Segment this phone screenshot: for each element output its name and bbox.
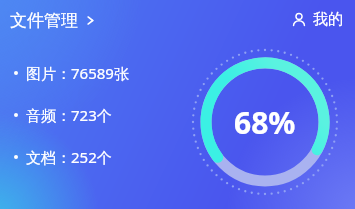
button[interactable]: 图片：76589张 [14,62,129,84]
staticText: 68% [234,102,296,143]
button[interactable]: 我的 Profile [289,8,345,31]
button[interactable]: 文档：252个 [14,146,112,168]
staticText: 文档：252个 [26,147,112,167]
button[interactable]: 文件管理 [8,8,98,33]
staticText: 图片：76589张 [26,63,129,83]
staticText: 文件管理 [10,10,78,31]
staticText: 我的 [313,10,343,29]
button[interactable]: 音频：723个 [14,104,112,126]
staticText: 音频：723个 [26,105,112,125]
